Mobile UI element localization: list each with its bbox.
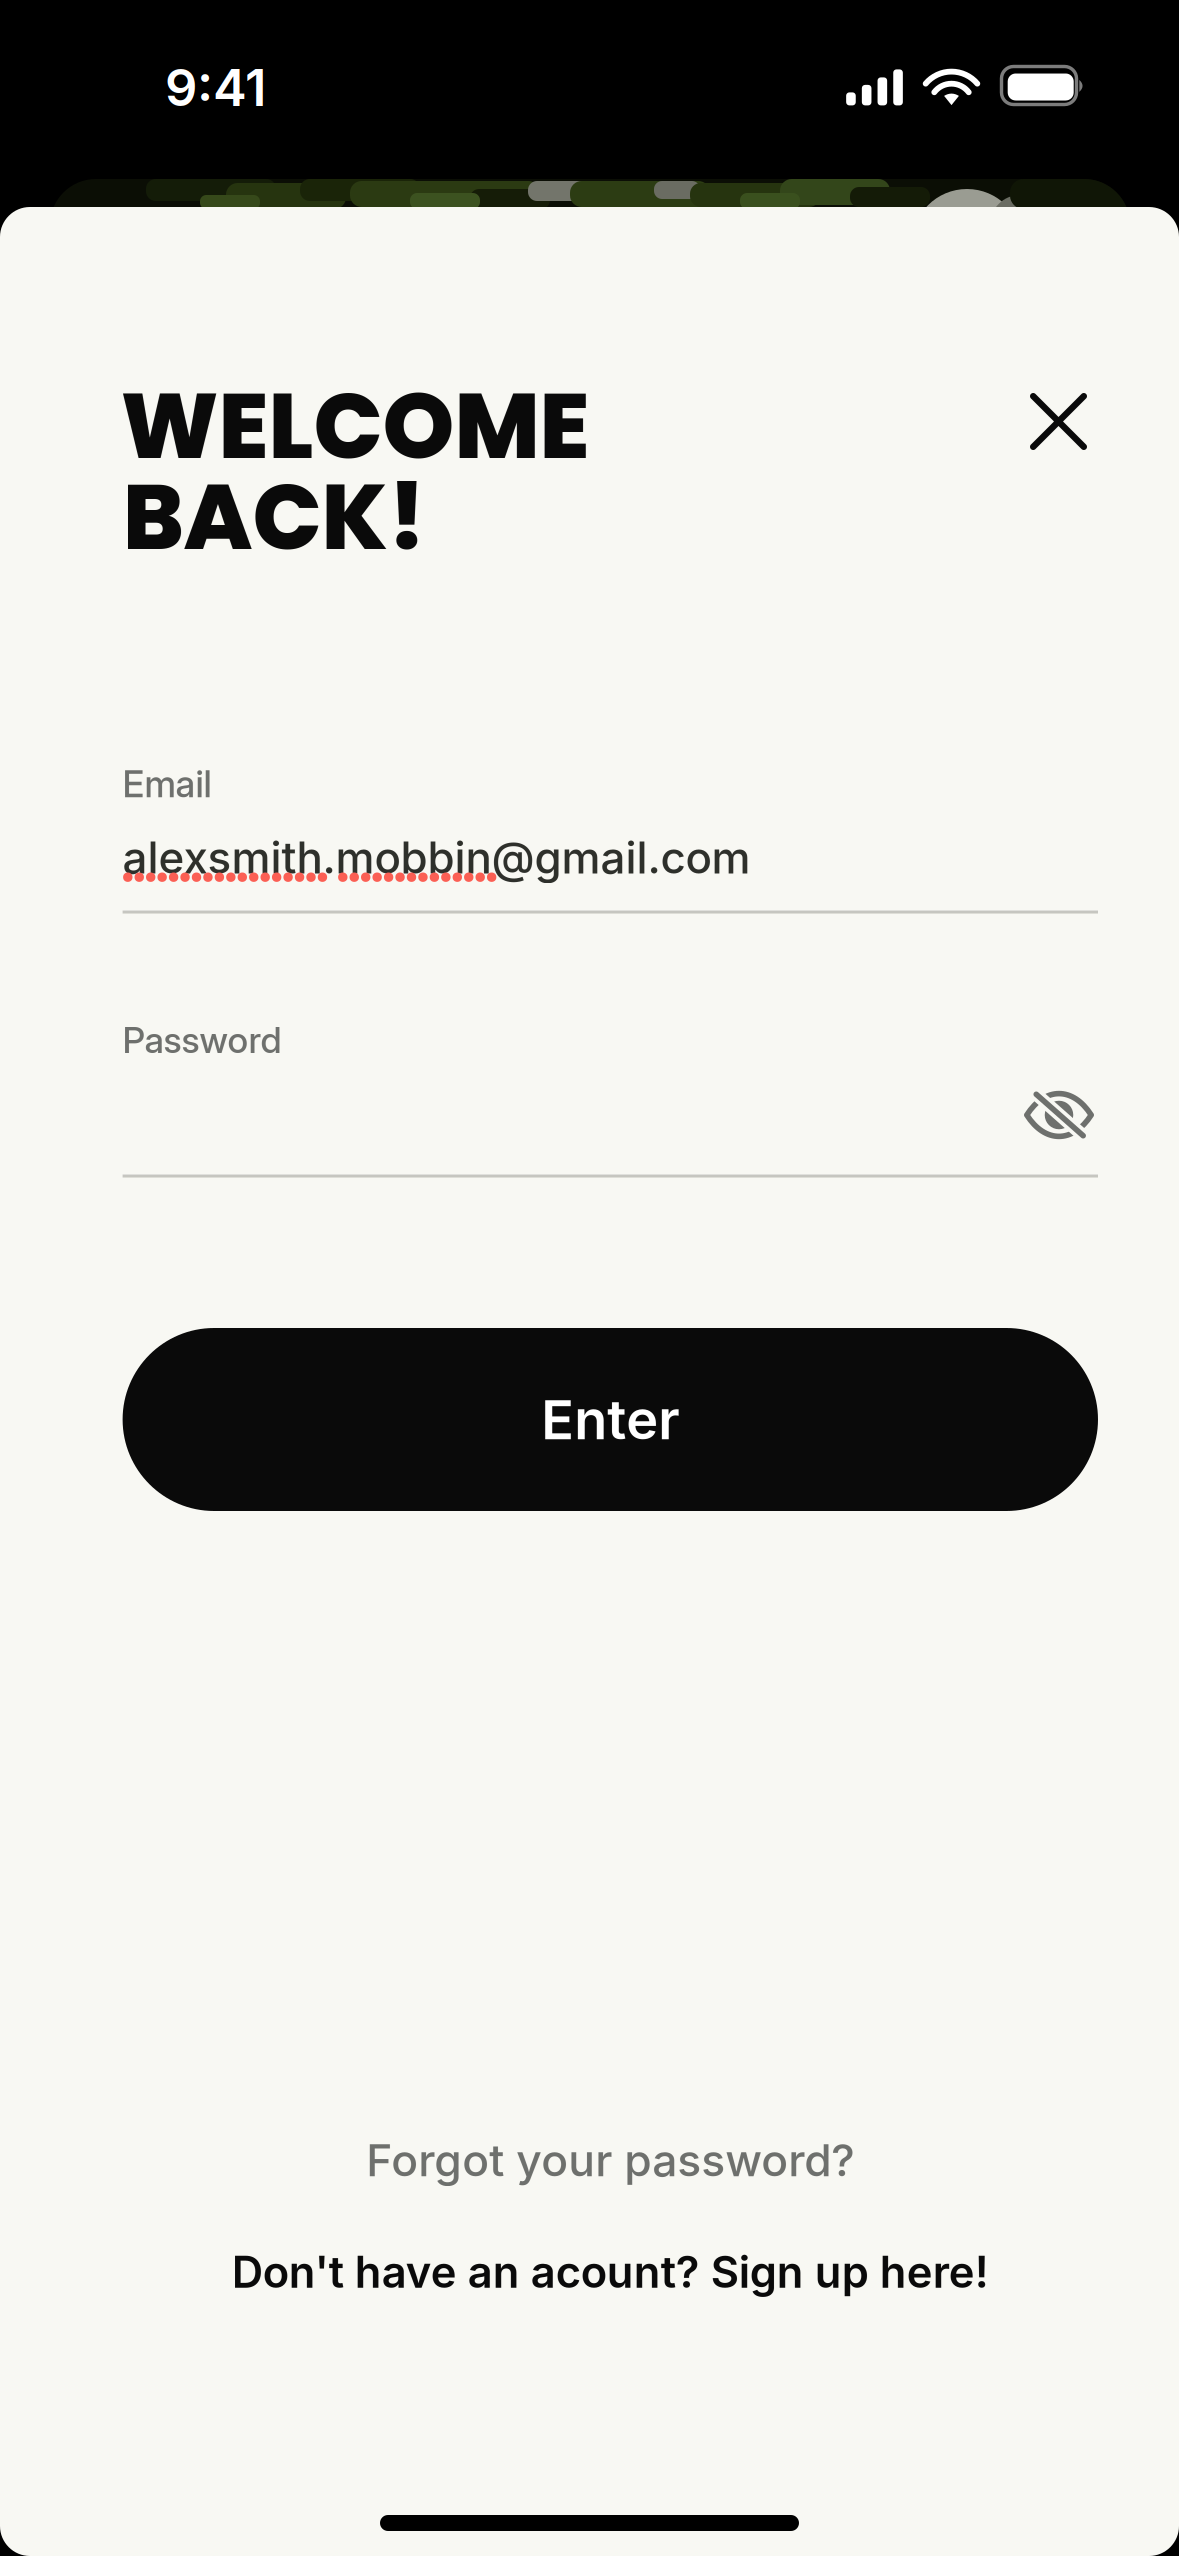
button[interactable]: Forgot your password? (123, 2125, 1098, 2195)
button[interactable]: Show password (1004, 1069, 1114, 1161)
staticText: Forgot your password? (366, 2133, 854, 2187)
staticText: 9:41 (165, 57, 266, 118)
button[interactable]: Enter (123, 1328, 1098, 1511)
staticText: alexsmith.mobbin@gmail.com (123, 831, 751, 884)
staticText: WELCOME (121, 362, 590, 490)
staticText: Enter (541, 1387, 679, 1452)
staticText: Email (123, 762, 212, 806)
staticText: BACK! (123, 453, 427, 581)
staticText: Password (123, 1018, 282, 1062)
staticText: Don't have an acount? Sign up here! (232, 2246, 989, 2298)
button[interactable]: Close (1003, 366, 1113, 476)
button[interactable]: Don't have an acount? Sign up here! (123, 2237, 1098, 2307)
